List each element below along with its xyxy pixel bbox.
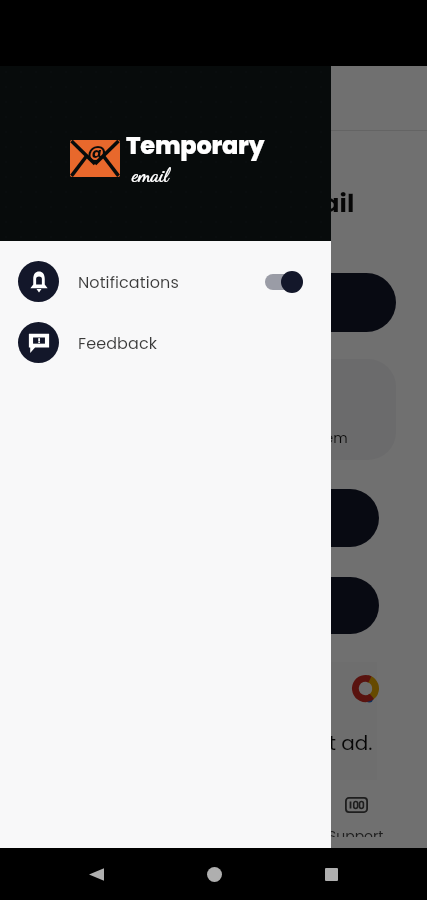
button[interactable]: Home [192,852,236,896]
staticText: Support [328,826,384,837]
button[interactable]: Recent apps [309,852,353,896]
button[interactable]: Notifications [0,251,331,312]
staticText: Feedback [78,332,158,354]
staticText: Test ad. [295,729,373,757]
button[interactable] [48,489,379,547]
button[interactable] [48,577,379,634]
staticText: Your Temporary Email [68,186,355,221]
button[interactable]: Back [74,852,118,896]
staticText: email [132,164,169,187]
staticText: No messages yet Keep this screen open to… [47,402,380,448]
button[interactable]: Toggle notifications [264,269,303,295]
staticText: Notifications [78,271,179,293]
staticText: @ [87,139,107,164]
staticText: Temporary [126,129,265,163]
button[interactable]: Feedback [0,312,331,373]
button[interactable]: Support [285,780,427,848]
